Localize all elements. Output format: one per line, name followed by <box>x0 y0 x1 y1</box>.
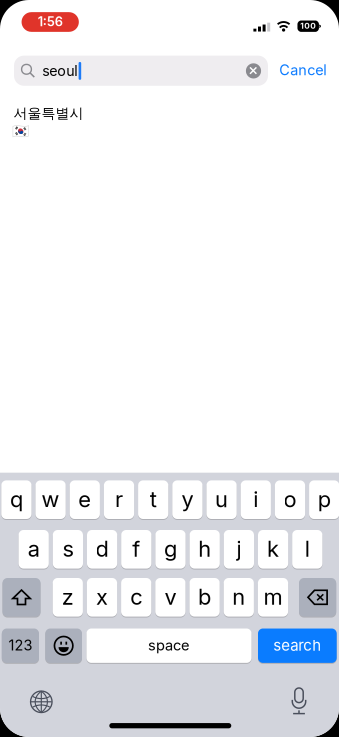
button[interactable]: Clear text <box>237 56 269 86</box>
button[interactable]: t <box>138 479 168 520</box>
button[interactable]: z <box>53 577 83 618</box>
staticText: w <box>42 486 60 512</box>
button[interactable]: Search <box>258 627 337 664</box>
staticText: space <box>148 636 190 654</box>
staticText: k <box>267 535 279 562</box>
staticText: j <box>236 535 241 562</box>
button[interactable]: s <box>53 529 83 570</box>
staticText: h <box>198 535 211 562</box>
staticText: d <box>96 535 109 562</box>
button[interactable]: Cancel <box>279 54 339 86</box>
button[interactable]: d <box>87 529 117 570</box>
button[interactable]: n <box>224 577 254 618</box>
staticText: o <box>283 486 296 512</box>
staticText: y <box>181 486 193 512</box>
staticText: 123 <box>8 636 32 654</box>
staticText: t <box>150 486 157 512</box>
staticText: 1:56 <box>38 14 63 29</box>
button[interactable]: h <box>190 529 220 570</box>
staticText: g <box>164 535 177 562</box>
button[interactable]: Space <box>86 627 251 664</box>
button[interactable]: u <box>206 479 237 520</box>
button[interactable]: r <box>104 479 134 520</box>
staticText: l <box>305 535 310 562</box>
staticText: r <box>115 486 123 512</box>
staticText: e <box>78 486 91 512</box>
staticText: seoul <box>42 62 77 79</box>
button[interactable]: q <box>1 479 31 520</box>
button[interactable]: b <box>189 577 220 618</box>
button[interactable]: o <box>275 479 305 520</box>
button[interactable]: m <box>258 577 288 618</box>
button[interactable]: Delete <box>299 577 336 618</box>
staticText: v <box>164 583 176 610</box>
staticText: u <box>215 486 228 512</box>
staticText: i <box>253 486 258 512</box>
staticText: z <box>62 583 74 610</box>
button[interactable]: p <box>309 479 339 520</box>
button[interactable]: a <box>19 529 49 570</box>
staticText: c <box>130 583 142 610</box>
staticText: search <box>273 636 321 654</box>
button[interactable]: f <box>121 529 151 570</box>
button[interactable]: l <box>292 529 322 570</box>
staticText: q <box>10 486 23 512</box>
button[interactable]: Shift <box>2 577 40 618</box>
button[interactable]: Emoji <box>45 627 82 664</box>
button[interactable]: Dictation <box>277 680 321 720</box>
button[interactable]: e <box>70 479 100 520</box>
staticText: s <box>62 535 73 562</box>
button[interactable]: x <box>87 577 117 618</box>
button[interactable]: c <box>121 577 151 618</box>
staticText: a <box>28 535 40 562</box>
button[interactable]: k <box>258 529 288 570</box>
staticText: x <box>96 583 108 610</box>
staticText: 100 <box>300 21 316 31</box>
button[interactable]: y <box>172 479 202 520</box>
button[interactable]: g <box>155 529 186 570</box>
button[interactable]: 서울특별시 <box>13 102 213 141</box>
staticText: m <box>263 583 282 610</box>
button[interactable]: w <box>35 479 66 520</box>
staticText: f <box>132 535 140 562</box>
button[interactable]: Numbers <box>2 627 39 664</box>
button[interactable]: Next keyboard <box>19 682 63 722</box>
button[interactable]: v <box>155 577 185 618</box>
button[interactable]: i <box>241 479 271 520</box>
staticText: n <box>232 583 245 610</box>
button[interactable]: j <box>224 529 254 570</box>
staticText: Cancel <box>279 61 326 79</box>
staticText: 🇰🇷 <box>12 123 29 139</box>
staticText: 서울특별시 <box>13 104 83 122</box>
staticText: b <box>198 583 211 610</box>
staticText: p <box>318 486 331 512</box>
